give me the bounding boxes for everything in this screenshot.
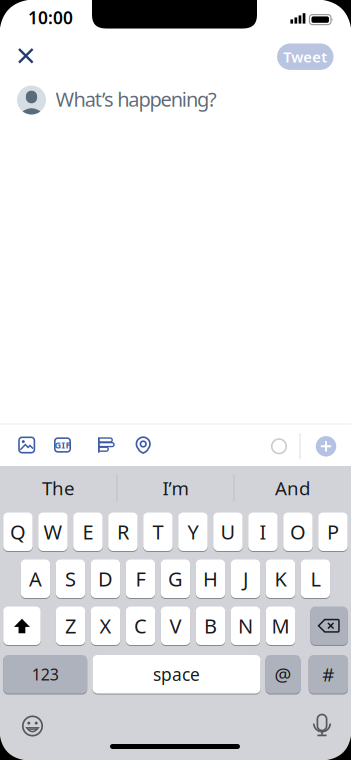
button[interactable]: G — [161, 559, 190, 598]
staticText: K — [274, 565, 286, 592]
button[interactable]: Tweet — [277, 43, 334, 70]
staticText: P — [327, 518, 339, 545]
button[interactable]: I’m — [120, 468, 230, 508]
staticText: S — [65, 565, 76, 592]
staticText: L — [310, 565, 320, 592]
staticText: O — [290, 518, 306, 545]
button[interactable]: Q — [3, 512, 33, 551]
button[interactable]: J — [231, 559, 260, 598]
staticText: A — [29, 565, 42, 592]
button[interactable]: F — [126, 559, 155, 598]
staticText: R — [117, 518, 129, 545]
button[interactable]: 123 — [3, 654, 87, 694]
staticText: I — [259, 518, 266, 545]
staticText: H — [203, 565, 218, 592]
staticText: 123 — [32, 664, 59, 685]
button[interactable]: Close — [11, 41, 41, 71]
staticText: @ — [274, 662, 291, 687]
staticText: 10:00 — [28, 6, 73, 29]
button[interactable]: C — [126, 606, 155, 645]
staticText: N — [238, 612, 253, 639]
button[interactable]: T — [143, 512, 173, 551]
staticText: X — [99, 612, 111, 639]
staticText: D — [98, 565, 113, 592]
staticText: C — [134, 612, 147, 639]
button[interactable]: I — [248, 512, 278, 551]
staticText: G — [168, 565, 183, 592]
button[interactable]: Add location — [128, 430, 158, 460]
button[interactable]: P — [318, 512, 348, 551]
button[interactable]: Y — [178, 512, 208, 551]
button[interactable]: W — [38, 512, 68, 551]
button[interactable]: The — [3, 468, 113, 508]
staticText: E — [82, 518, 93, 545]
staticText: What’s happening? — [55, 86, 217, 112]
button[interactable]: Delete — [310, 606, 348, 645]
button[interactable]: S — [56, 559, 85, 598]
staticText: The — [42, 476, 75, 500]
staticText: U — [220, 518, 235, 545]
staticText: Y — [187, 518, 198, 545]
button[interactable]: N — [231, 606, 260, 645]
button[interactable]: R — [108, 512, 138, 551]
button[interactable]: X — [91, 606, 120, 645]
staticText: space — [153, 663, 200, 686]
staticText: W — [43, 518, 62, 545]
button[interactable]: Add GIF — [47, 430, 77, 460]
button[interactable]: U — [213, 512, 243, 551]
staticText: Tweet — [283, 47, 327, 66]
staticText: B — [204, 612, 217, 639]
button[interactable]: D — [91, 559, 120, 598]
button[interactable]: And — [237, 468, 347, 508]
button[interactable]: L — [301, 559, 330, 598]
button[interactable]: M — [266, 606, 295, 645]
button[interactable]: V — [161, 606, 190, 645]
staticText: M — [272, 612, 290, 639]
staticText: GIF — [54, 439, 70, 451]
button[interactable]: Dictation — [307, 712, 337, 742]
staticText: I’m — [162, 476, 188, 500]
button[interactable]: K — [266, 559, 295, 598]
button[interactable]: Add another Tweet — [312, 432, 340, 460]
staticText: # — [322, 662, 334, 687]
button[interactable]: @ — [265, 654, 300, 694]
staticText: V — [170, 612, 182, 639]
button[interactable]: Emoji — [17, 711, 47, 741]
staticText: And — [275, 476, 310, 500]
staticText: T — [152, 518, 163, 545]
button[interactable]: A — [21, 559, 50, 598]
button[interactable]: space — [92, 654, 260, 694]
button[interactable]: # — [309, 654, 348, 694]
staticText: Q — [10, 518, 26, 545]
button[interactable]: Z — [56, 606, 85, 645]
staticText: Z — [65, 612, 76, 639]
staticText: J — [243, 565, 248, 592]
button[interactable]: H — [196, 559, 225, 598]
staticText: F — [135, 565, 145, 592]
button[interactable]: Add photo — [12, 430, 42, 460]
button[interactable]: O — [283, 512, 313, 551]
button[interactable]: B — [196, 606, 225, 645]
button[interactable]: Shift — [3, 606, 41, 645]
button[interactable]: Add poll — [91, 430, 121, 460]
button[interactable]: E — [73, 512, 103, 551]
